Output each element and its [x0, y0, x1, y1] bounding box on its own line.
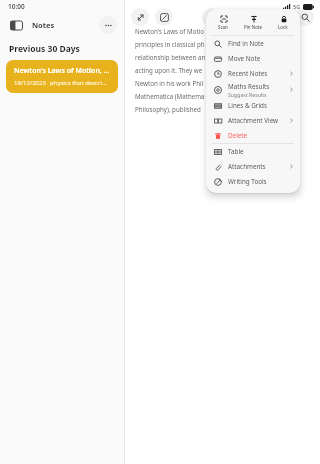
button[interactable]: Maths Results	[206, 81, 300, 98]
staticText: Move Note	[228, 54, 261, 63]
staticText: Lines & Grids	[228, 101, 267, 110]
button[interactable]: Attachments	[206, 159, 300, 174]
staticText: Philosophy), published	[135, 105, 201, 113]
staticText: physics that describe...	[50, 79, 110, 87]
staticText: 18/12/2025	[14, 79, 46, 87]
staticText: relationship between an	[135, 53, 206, 61]
button[interactable]: Search	[296, 8, 314, 26]
button[interactable]: Text format	[202, 8, 220, 26]
staticText: Newton in his work Phil	[135, 79, 204, 87]
button[interactable]: Pin Note	[240, 13, 267, 31]
button[interactable]: Lines & Grids	[206, 98, 300, 113]
button[interactable]: Table	[206, 144, 300, 159]
staticText: Notes	[32, 20, 55, 30]
staticText: Previous 30 Days	[9, 43, 80, 55]
staticText: acting upon it. They we	[135, 66, 203, 74]
staticText: Scan	[218, 24, 228, 30]
staticText: principles in classical ph	[135, 40, 205, 48]
button[interactable]: More options	[99, 16, 117, 34]
staticText: Maths Results	[228, 82, 270, 91]
button[interactable]: Writing Tools	[206, 174, 300, 189]
button[interactable]: Delete	[206, 128, 300, 143]
staticText: Lock	[278, 24, 288, 30]
staticText: Find in Note	[228, 39, 264, 48]
staticText: Newton's Laws of Motio	[135, 27, 205, 35]
staticText: Recent Notes	[228, 69, 268, 78]
button[interactable]: Attachment View	[206, 113, 300, 128]
staticText: Attachments	[228, 162, 266, 171]
staticText: Attachment View	[228, 116, 279, 125]
button[interactable]: Compose	[155, 8, 173, 26]
button[interactable]: Move Note	[206, 51, 300, 66]
button[interactable]: Newton's Laws of Motion, w...	[6, 60, 118, 93]
button[interactable]: Find in Note	[206, 36, 300, 51]
button[interactable]: Scan	[214, 13, 232, 31]
staticText: Delete	[228, 131, 248, 140]
button[interactable]: Recent Notes	[206, 66, 300, 81]
button[interactable]: Lock	[274, 13, 292, 31]
staticText: 10:00	[8, 2, 25, 11]
staticText: Writing Tools	[228, 177, 267, 186]
staticText: Newton's Laws of Motion, w...	[14, 66, 110, 76]
staticText: 5G	[293, 3, 301, 10]
button[interactable]: Expand	[131, 8, 149, 26]
staticText: Suggest Results	[228, 91, 267, 98]
staticText: Pin Note	[244, 24, 263, 30]
staticText: Mathematica (Mathema	[135, 92, 205, 100]
button[interactable]: Toggle sidebar	[7, 16, 25, 34]
staticText: Table	[228, 147, 244, 156]
